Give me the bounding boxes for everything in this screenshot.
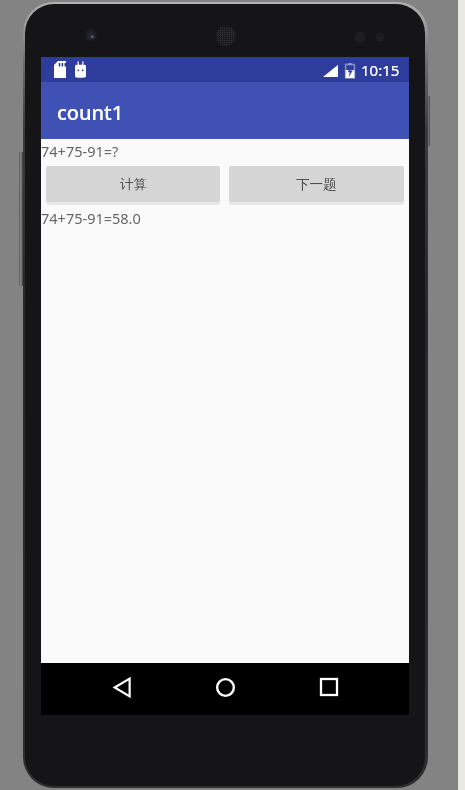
staticText: 10:15 (361, 60, 400, 80)
button[interactable]: Back (99, 664, 145, 710)
button[interactable]: 下一题 (229, 166, 404, 202)
button[interactable]: Recent apps (306, 664, 352, 710)
staticText: count1 (57, 99, 124, 126)
button[interactable]: 计算 (46, 166, 220, 202)
staticText: 74+75-91=? (41, 141, 119, 161)
button[interactable]: Home (202, 664, 248, 710)
staticText: 74+75-91=58.0 (41, 208, 141, 228)
staticText: 计算 (120, 176, 147, 193)
staticText: 下一题 (296, 176, 337, 193)
